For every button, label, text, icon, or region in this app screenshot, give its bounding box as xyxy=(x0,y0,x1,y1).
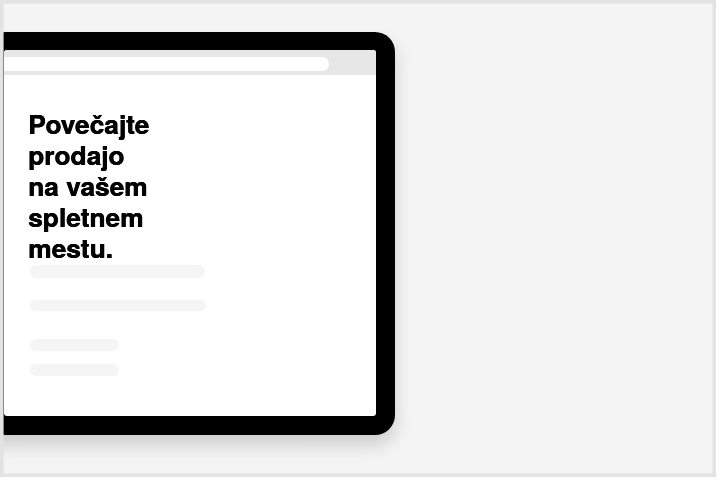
button[interactable]: Browser address bar xyxy=(4,50,376,75)
other: Tablet device preview xyxy=(0,32,395,435)
staticText: Povečajte prodajo na vašem spletnem mest… xyxy=(28,110,150,265)
